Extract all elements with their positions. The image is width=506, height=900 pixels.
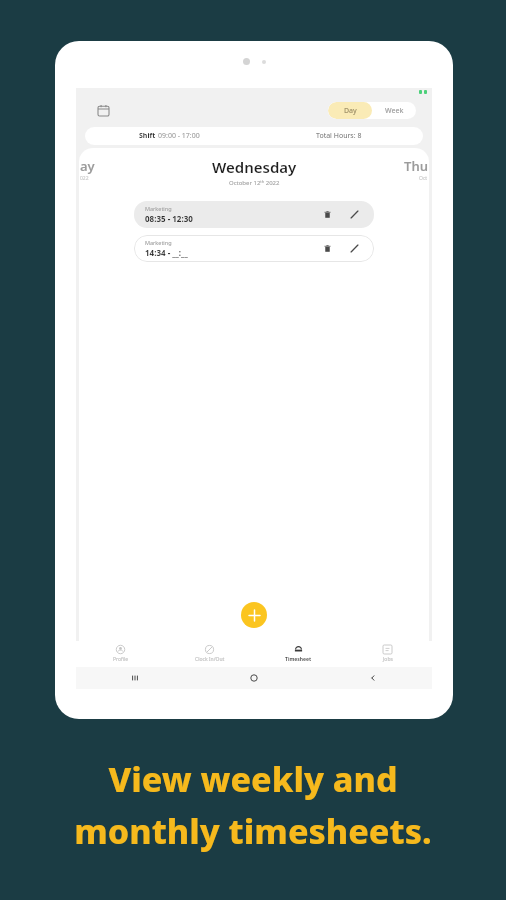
staticText: 022 [80,175,89,182]
button[interactable]: Edit entry [346,206,363,223]
staticText: 08:35 - 12:30 [145,213,193,224]
button[interactable]: Marketing [134,235,374,262]
button[interactable]: Home [194,667,313,689]
button[interactable]: Timesheet [254,641,343,667]
staticText: View weekly and [108,756,398,802]
button[interactable]: Profile [76,641,165,667]
button[interactable]: Add entry [241,602,267,628]
staticText: Week [385,106,404,116]
staticText: ay [80,157,95,175]
staticText: Timesheet [285,656,312,663]
staticText: Thu [404,157,428,175]
button[interactable]: Clock In/Out [165,641,254,667]
button[interactable]: Recents [76,667,194,689]
button[interactable]: Marketing [134,201,374,228]
staticText: October 12ᵗʰ 2022 [229,179,280,187]
button[interactable]: Jobs [343,641,432,667]
staticText: Profile [113,656,129,663]
staticText: Oct [419,175,428,182]
staticText: Marketing [145,239,172,246]
staticText: 09:00 - 17:00 [158,131,200,141]
staticText: Wednesday [212,157,297,177]
staticText: Marketing [145,205,172,212]
button[interactable]: Day [328,102,372,119]
staticText: Total Hours: 8 [316,131,362,141]
staticText: 14:34 - __:__ [145,247,188,258]
staticText: monthly timesheets. [74,808,432,854]
staticText: Shift [139,131,158,141]
button[interactable]: Delete entry [319,240,336,257]
button[interactable]: Calendar [94,101,112,119]
button[interactable]: Shift [85,127,423,145]
staticText: Clock In/Out [195,656,225,663]
staticText: Day [344,106,357,116]
button[interactable]: Week [372,102,416,119]
button[interactable]: Edit entry [346,240,363,257]
button[interactable]: Back [313,667,432,689]
staticText: Jobs [383,656,393,663]
button[interactable]: Delete entry [319,206,336,223]
